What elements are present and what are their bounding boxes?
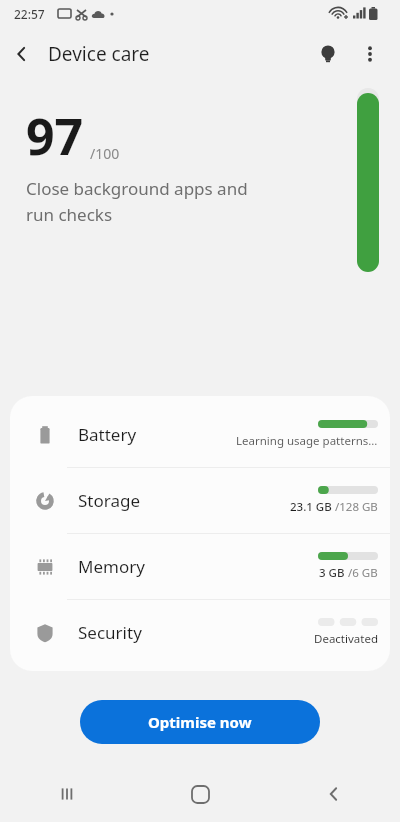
button[interactable]: Optimise now	[80, 700, 320, 744]
staticText: /6 GB	[348, 565, 378, 581]
button[interactable]: Security	[10, 600, 390, 665]
staticText: /100	[90, 144, 120, 163]
staticText: Optimise now	[148, 712, 252, 732]
button[interactable]: More options	[350, 34, 390, 74]
staticText: Memory	[78, 555, 318, 578]
staticText: Security	[78, 621, 314, 644]
staticText: Device care	[48, 41, 150, 67]
button[interactable]: Back	[267, 766, 400, 822]
staticText: 3 GB	[319, 565, 348, 581]
button[interactable]: Memory	[10, 534, 390, 599]
staticText: Close background apps and run checks	[26, 177, 248, 226]
button[interactable]: Tips	[308, 34, 348, 74]
staticText: Battery	[78, 423, 236, 446]
staticText: Deactivated	[314, 631, 378, 647]
staticText: Learning usage patterns…	[236, 433, 378, 449]
staticText: 22:57	[14, 6, 45, 22]
button[interactable]: Storage	[10, 468, 390, 533]
staticText: 23.1 GB	[290, 499, 335, 515]
staticText: 97	[26, 102, 84, 170]
button[interactable]: Battery	[10, 402, 390, 467]
button[interactable]: Back	[0, 32, 44, 76]
button[interactable]: Home	[134, 766, 267, 822]
staticText: Storage	[78, 489, 290, 512]
button[interactable]: Recents	[0, 766, 134, 822]
staticText: /128 GB	[335, 499, 378, 515]
